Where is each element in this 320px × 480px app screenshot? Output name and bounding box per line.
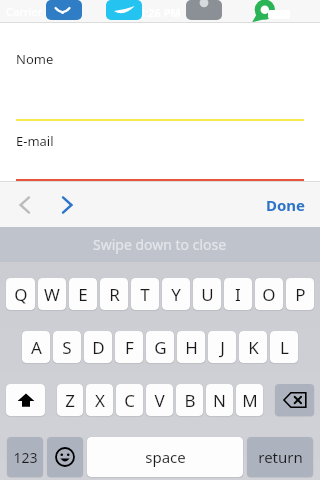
staticText: 123 (13, 448, 38, 467)
button[interactable]: S (53, 331, 81, 363)
button[interactable]: C (116, 384, 143, 416)
staticText: Y (171, 283, 181, 306)
staticText: K (248, 336, 259, 359)
staticText: M (242, 389, 258, 412)
button[interactable]: Next field (52, 190, 82, 220)
button[interactable]: Q (6, 278, 35, 310)
staticText: G (154, 336, 167, 359)
button[interactable]: G (146, 331, 174, 363)
staticText: X (95, 389, 105, 412)
button[interactable]: 123 (7, 437, 43, 477)
staticText: space (145, 447, 186, 467)
staticText: V (154, 389, 165, 412)
staticText: Z (65, 389, 75, 412)
button[interactable]: N (206, 384, 233, 416)
button[interactable]: Swipe down to close (0, 227, 320, 262)
staticText: I (235, 283, 241, 306)
button[interactable]: Shift (6, 384, 45, 416)
staticText: E (78, 283, 88, 306)
staticText: 3:26 PM (139, 5, 181, 20)
staticText: J (220, 336, 225, 359)
staticText: S (62, 336, 72, 359)
staticText: return (258, 447, 303, 467)
button[interactable]: X (86, 384, 113, 416)
button[interactable]: O (255, 278, 283, 310)
button[interactable]: Z (57, 384, 83, 416)
button[interactable]: K (239, 331, 267, 363)
button[interactable]: Backspace (275, 384, 314, 416)
staticText: Nome (16, 50, 54, 68)
staticText: L (280, 336, 289, 359)
staticText: H (185, 336, 198, 359)
button[interactable]: U (193, 278, 221, 310)
button[interactable]: E (69, 278, 97, 310)
button[interactable]: L (270, 331, 298, 363)
button[interactable]: V (146, 384, 173, 416)
button[interactable]: space (87, 437, 243, 477)
staticText: T (140, 283, 150, 306)
button[interactable]: return (247, 437, 313, 477)
button[interactable]: Y (162, 278, 190, 310)
staticText: Swipe down to close (93, 235, 227, 254)
staticText: N (213, 389, 226, 412)
staticText: R (109, 283, 120, 306)
button[interactable]: Previous field (10, 190, 40, 220)
button[interactable]: A (22, 331, 50, 363)
button[interactable]: I (224, 278, 252, 310)
staticText: Done (266, 195, 306, 215)
button[interactable]: J (208, 331, 236, 363)
staticText: Q (14, 283, 28, 306)
button[interactable]: H (177, 331, 205, 363)
staticText: F (125, 336, 134, 359)
staticText: W (44, 283, 60, 306)
staticText: A (31, 336, 42, 359)
button[interactable]: Emoji (47, 437, 83, 477)
staticText: U (201, 283, 214, 306)
button[interactable]: W (38, 278, 66, 310)
button[interactable]: F (115, 331, 143, 363)
staticText: P (295, 283, 306, 306)
button[interactable]: B (176, 384, 203, 416)
staticText: E-mail (16, 132, 54, 150)
button[interactable]: T (131, 278, 159, 310)
staticText: B (184, 389, 196, 412)
staticText: C (124, 389, 135, 412)
staticText: D (92, 336, 105, 359)
button[interactable] (0, 171, 320, 181)
button[interactable]: P (286, 278, 314, 310)
staticText: O (262, 283, 276, 306)
button[interactable]: D (84, 331, 112, 363)
button[interactable] (0, 89, 320, 121)
button[interactable]: Done (252, 187, 320, 223)
button[interactable]: R (100, 278, 128, 310)
button[interactable]: M (236, 384, 263, 416)
